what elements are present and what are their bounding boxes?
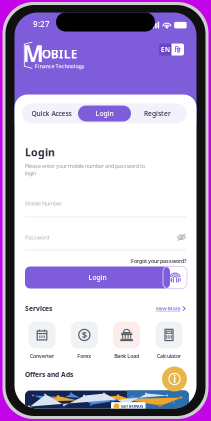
staticText: Login [25,145,55,159]
staticText: Login [88,273,106,282]
button[interactable]: $ [67,321,101,360]
staticText: Login [95,109,113,118]
staticText: EN [161,45,170,54]
button[interactable]: Register [131,105,184,121]
button[interactable]: View More [155,305,186,312]
staticText: Forgot your password? [131,257,186,265]
button[interactable]: Fingerprint login [163,266,187,288]
button[interactable]: Login [78,105,131,121]
staticText: Mobile Number [25,200,62,207]
staticText: Forex [77,352,91,360]
button[interactable]: Converter [25,321,59,360]
staticText: i [173,371,176,386]
staticText: Please enter your mobile number and pass… [25,162,145,177]
staticText: Services [25,304,52,313]
staticText: Finance Technology [34,63,84,70]
staticText: Converter [30,352,54,360]
button[interactable]: Calculator [152,321,186,360]
staticText: $ [82,329,87,341]
button[interactable]: EN [159,43,184,55]
button[interactable]: Bank Load [110,321,144,360]
staticText: Offers and Ads [25,370,73,379]
button[interactable]: Forgot your password? [131,257,186,265]
button[interactable]: Show password [177,233,186,242]
staticText: Bank Load [114,352,139,360]
staticText: Password [25,234,49,241]
button[interactable]: Quick Access [25,105,78,121]
staticText: Quick Access [31,109,71,118]
staticText: Calculator [157,352,181,360]
staticText: OBILE [42,46,78,62]
staticText: Register [144,109,171,118]
staticText: हि [175,45,181,54]
staticText: M [23,38,44,68]
staticText: View More [155,305,180,312]
button[interactable]: Login [25,266,170,288]
staticText: 9:27 [33,19,50,29]
staticText: GET BONUS [121,404,143,409]
button[interactable]: Info [162,366,187,391]
